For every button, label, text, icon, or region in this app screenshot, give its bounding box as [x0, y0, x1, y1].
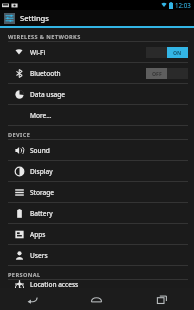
- button[interactable]: More...: [0, 105, 194, 125]
- staticText: Users: [30, 251, 48, 260]
- staticText: PERSONAL: [8, 271, 41, 279]
- button[interactable]: Bluetooth: [0, 63, 194, 83]
- staticText: Display: [30, 167, 53, 176]
- staticText: More...: [30, 111, 52, 120]
- staticText: Apps: [30, 230, 46, 239]
- button[interactable]: Recent apps: [129, 288, 194, 310]
- staticText: Settings: [20, 13, 49, 23]
- button[interactable]: Apps: [0, 224, 194, 244]
- staticText: DEVICE: [8, 131, 31, 139]
- staticText: Bluetooth: [30, 69, 61, 78]
- staticText: Storage: [30, 188, 55, 197]
- staticText: Data usage: [30, 90, 66, 99]
- button[interactable]: Storage: [0, 182, 194, 202]
- button[interactable]: Sound: [0, 140, 194, 160]
- button[interactable]: Home: [64, 288, 129, 310]
- button[interactable]: Users: [0, 245, 194, 265]
- button[interactable]: Location access: [0, 280, 194, 288]
- staticText: ON: [173, 49, 182, 56]
- staticText: Wi-Fi: [30, 48, 46, 57]
- button[interactable]: Back: [0, 288, 64, 310]
- button[interactable]: Switch on: [146, 47, 188, 58]
- staticText: Battery: [30, 209, 53, 218]
- button[interactable]: Switch off: [146, 68, 188, 79]
- staticText: OFF: [152, 70, 162, 77]
- staticText: Location access: [30, 280, 79, 288]
- button[interactable]: Wi-Fi: [0, 42, 194, 62]
- staticText: WIRELESS & NETWORKS: [8, 33, 81, 41]
- button[interactable]: Battery: [0, 203, 194, 223]
- button[interactable]: Data usage: [0, 84, 194, 104]
- staticText: 12:03: [175, 1, 191, 9]
- staticText: Sound: [30, 146, 50, 155]
- button[interactable]: Display: [0, 161, 194, 181]
